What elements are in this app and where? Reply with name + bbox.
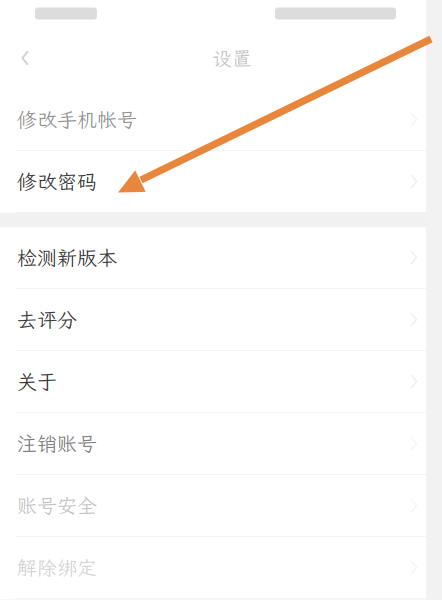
button[interactable]: 注销账号 [0, 413, 442, 475]
staticText: 去评分 [17, 306, 77, 333]
button[interactable]: Back [0, 36, 50, 80]
button[interactable]: 解除绑定 [0, 537, 442, 599]
staticText: 修改密码 [17, 168, 97, 195]
button[interactable]: 修改手机帐号 [0, 89, 442, 151]
button[interactable]: 修改密码 [0, 151, 442, 213]
button[interactable]: 检测新版本 [0, 227, 442, 289]
staticText: 检测新版本 [17, 244, 117, 271]
staticText: 关于 [17, 368, 57, 395]
staticText: 账号安全 [17, 492, 97, 519]
staticText: 设置 [212, 45, 252, 71]
staticText: 修改手机帐号 [17, 106, 137, 133]
staticText: 解除绑定 [17, 554, 97, 581]
button[interactable]: 账号安全 [0, 475, 442, 537]
staticText: 注销账号 [17, 430, 97, 457]
button[interactable]: 关于 [0, 351, 442, 413]
button[interactable]: 去评分 [0, 289, 442, 351]
